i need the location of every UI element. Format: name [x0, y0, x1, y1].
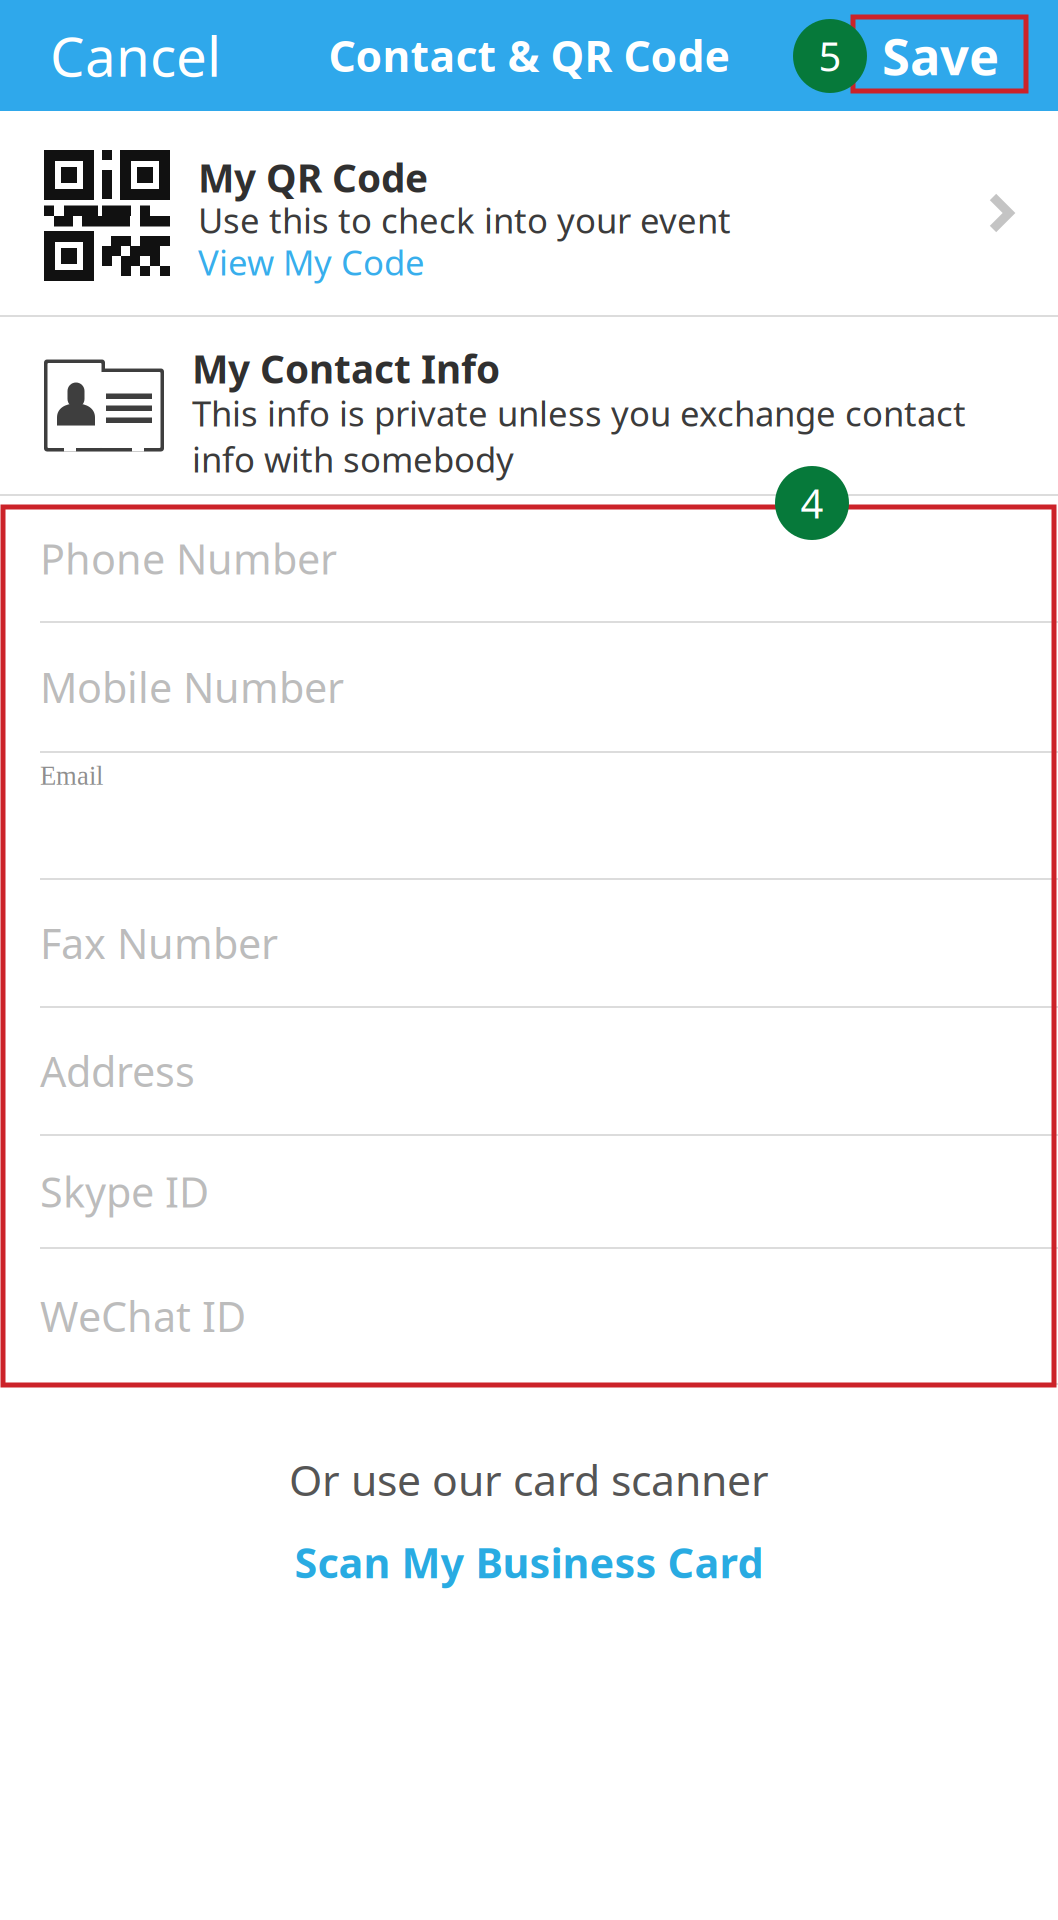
staticText: Phone Number	[40, 531, 337, 586]
button[interactable]: Fax Number	[0, 880, 1058, 1006]
button[interactable]: WeChat ID	[0, 1249, 1058, 1383]
staticText: Contact & QR Code	[328, 27, 729, 84]
staticText: 5	[818, 29, 841, 82]
button[interactable]: Address	[0, 1008, 1058, 1134]
staticText: Mobile Number	[40, 660, 344, 714]
button[interactable]: Mobile Number	[0, 623, 1058, 751]
button[interactable]: Cancel	[0, 0, 255, 111]
staticText: View My Code	[198, 239, 425, 285]
staticText: Skype ID	[40, 1164, 209, 1219]
staticText: My QR Code	[198, 152, 428, 203]
button[interactable]: Save	[848, 15, 1029, 95]
staticText: 4	[800, 476, 823, 529]
staticText: Email	[40, 761, 103, 790]
staticText: WeChat ID	[40, 1289, 246, 1343]
button[interactable]: My QR Code	[0, 111, 1058, 315]
staticText: Save	[882, 22, 999, 89]
button[interactable]: Phone Number	[0, 496, 1058, 621]
staticText: My Contact Info	[192, 343, 500, 394]
staticText: Address	[40, 1044, 195, 1098]
staticText: Cancel	[50, 19, 221, 92]
button[interactable]: Scan My Business Card	[270, 1508, 787, 1600]
button[interactable]: Skype ID	[0, 1136, 1058, 1247]
staticText: This info is private unless you exchange…	[192, 390, 966, 482]
staticText: Fax Number	[40, 916, 278, 970]
button[interactable]: Email	[0, 753, 1058, 878]
staticText: Or use our card scanner	[289, 1451, 769, 1508]
staticText: Scan My Business Card	[294, 1535, 763, 1590]
staticText: Use this to check into your event	[198, 197, 731, 243]
